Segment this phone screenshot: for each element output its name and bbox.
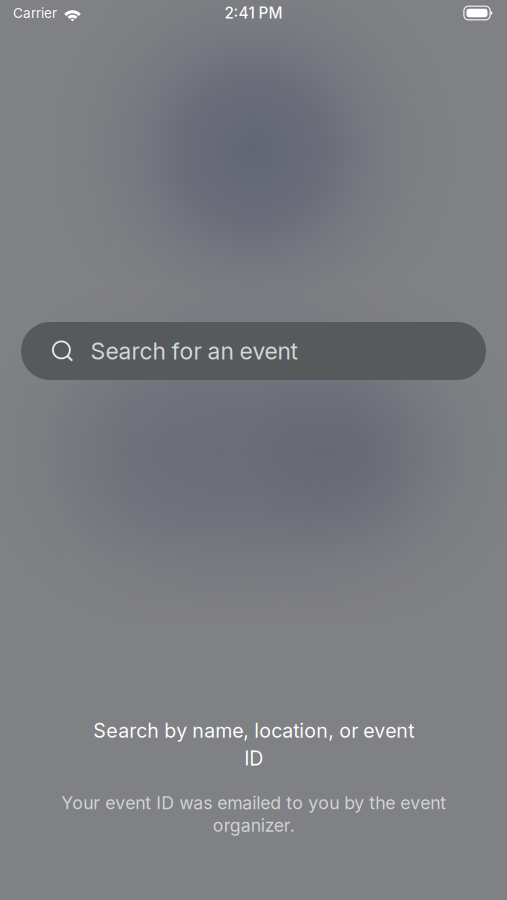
staticText: Your event ID was emailed to you by the … bbox=[61, 792, 446, 836]
staticText: Search for an event bbox=[90, 337, 297, 365]
button[interactable]: Search for an event bbox=[21, 322, 486, 380]
staticText: Carrier bbox=[13, 5, 57, 21]
staticText: Search by name, location, or event ID bbox=[93, 719, 414, 770]
staticText: 2:41 PM bbox=[224, 4, 282, 22]
